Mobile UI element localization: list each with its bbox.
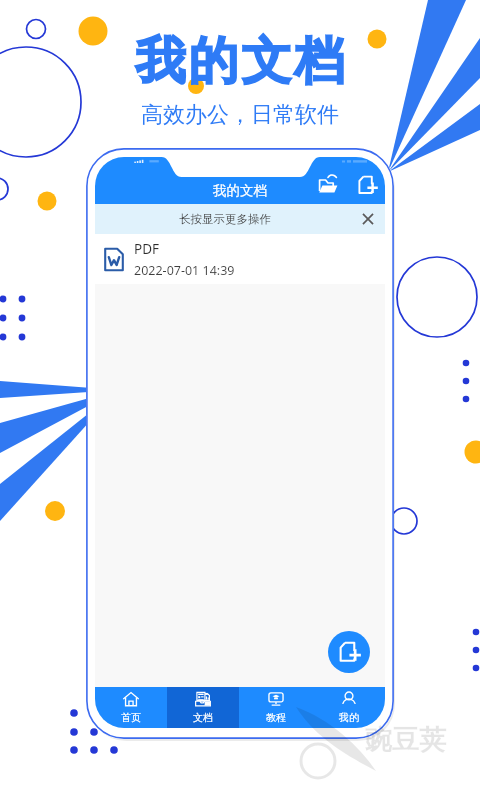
button[interactable]: 教程 xyxy=(239,687,312,728)
button[interactable]: PDF xyxy=(95,234,385,284)
button[interactable]: Close xyxy=(359,210,377,228)
staticText: 豌豆荚 xyxy=(365,723,446,757)
button[interactable]: 首页 xyxy=(95,687,167,728)
button[interactable]: 文档 xyxy=(167,687,239,728)
button[interactable]: 长按显示更多操作 xyxy=(95,204,385,234)
button[interactable]: Open folder xyxy=(317,174,339,196)
staticText: PDF xyxy=(134,240,160,258)
staticText: 教程 xyxy=(266,711,286,724)
button[interactable]: New document xyxy=(356,174,378,196)
staticText: 我的文档 xyxy=(213,182,267,199)
staticText: 2022-07-01 14:39 xyxy=(134,262,235,279)
staticText: 首页 xyxy=(121,711,141,724)
staticText: 我的文档 xyxy=(134,30,346,93)
button[interactable]: 我的 xyxy=(312,687,385,728)
button[interactable]: New document xyxy=(328,631,370,673)
staticText: 高效办公，日常软件 xyxy=(141,101,339,129)
staticText: 我的 xyxy=(339,711,359,724)
staticText: 长按显示更多操作 xyxy=(179,212,271,226)
staticText: 文档 xyxy=(193,711,213,724)
